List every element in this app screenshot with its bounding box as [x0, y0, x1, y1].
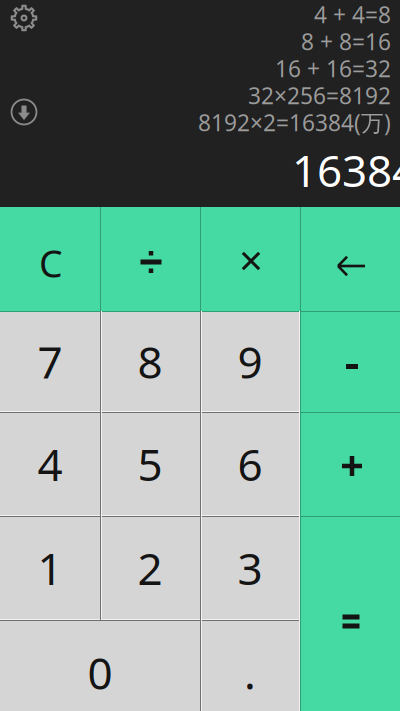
staticText: 5 — [137, 435, 162, 493]
button[interactable]: 7 — [0, 311, 100, 412]
button[interactable]: 1 — [0, 516, 100, 620]
button[interactable]: Equals — [300, 516, 400, 711]
staticText: C — [39, 238, 63, 288]
staticText: 32×256=8192 — [248, 80, 391, 110]
button[interactable]: 0 — [0, 620, 200, 711]
staticText: . — [244, 643, 256, 702]
staticText: 1 — [37, 539, 62, 597]
staticText: 2 — [137, 539, 162, 597]
button[interactable]: 6 — [200, 412, 300, 516]
staticText: 6 — [237, 435, 262, 493]
button[interactable]: 3 — [200, 516, 300, 620]
staticText: 9 — [237, 332, 262, 391]
button[interactable]: 8 — [100, 311, 200, 412]
staticText: 8192×2=16384(万) — [198, 107, 391, 137]
button[interactable]: Minus — [300, 311, 400, 412]
button[interactable]: Backspace — [300, 207, 400, 311]
button[interactable]: 5 — [100, 412, 200, 516]
button[interactable]: 2 — [100, 516, 200, 620]
staticText: 7 — [37, 332, 62, 391]
button[interactable]: . — [200, 620, 300, 711]
staticText: 8 — [137, 332, 162, 391]
staticText: 8 + 8=16 — [301, 26, 391, 56]
button[interactable]: Clear — [0, 207, 100, 311]
staticText: 3 — [237, 539, 262, 597]
staticText: 4 + 4=8 — [314, 0, 391, 29]
staticText: 16384 — [292, 141, 400, 199]
button[interactable]: Plus — [300, 412, 400, 516]
staticText: 4 — [37, 435, 62, 493]
button[interactable]: 9 — [200, 311, 300, 412]
button[interactable]: 4 — [0, 412, 100, 516]
staticText: 16 + 16=32 — [275, 53, 391, 83]
button[interactable]: Divide — [100, 207, 200, 311]
button[interactable]: Settings — [2, 0, 46, 38]
staticText: 0 — [87, 643, 112, 702]
button[interactable]: Multiply — [200, 207, 300, 311]
button[interactable]: Download — [2, 92, 46, 132]
